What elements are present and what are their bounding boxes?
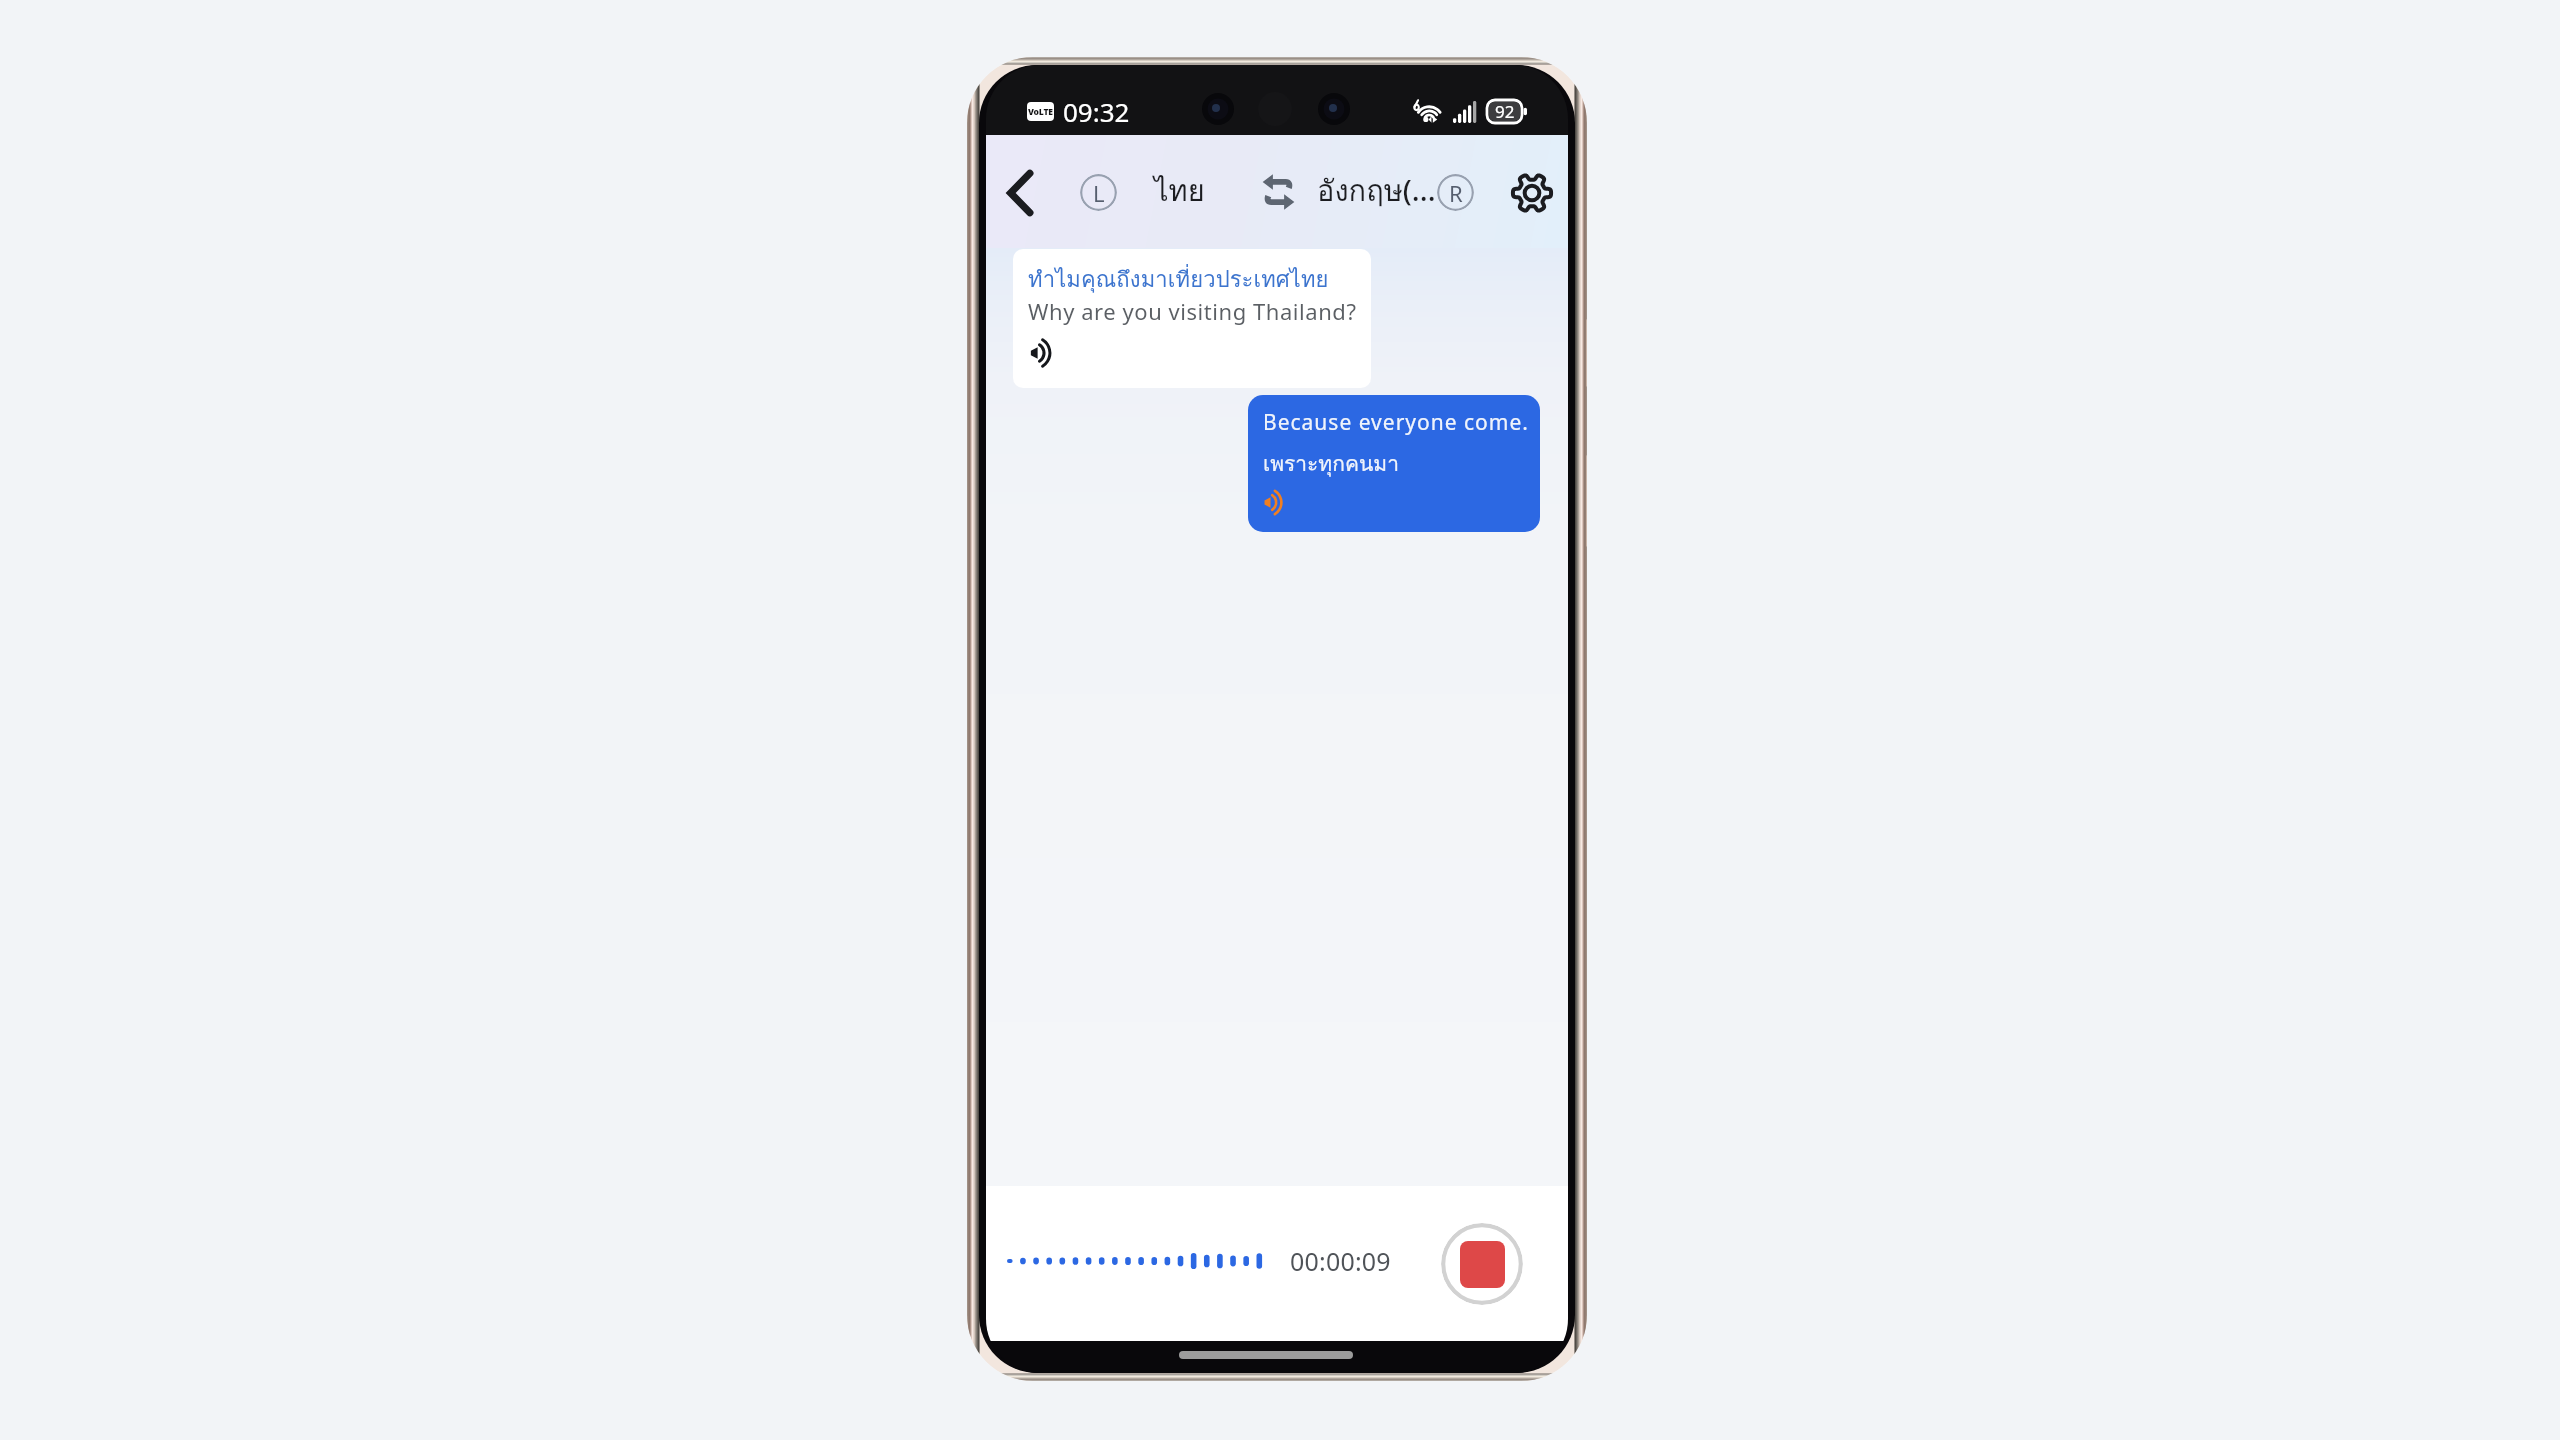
staticText: อังกฤษ(... <box>1317 168 1436 214</box>
button[interactable]: Play audio <box>1028 338 1054 368</box>
staticText: 92 <box>1495 100 1515 123</box>
staticText: 09:32 <box>1063 94 1130 129</box>
button[interactable]: Swap languages <box>1257 169 1299 215</box>
staticText: 00:00:09 <box>1290 1244 1391 1278</box>
staticText: เพราะทุกคนมา <box>1263 447 1399 480</box>
staticText: VoLTE <box>1028 106 1053 118</box>
button[interactable]: L <box>1080 174 1117 211</box>
button[interactable]: Settings <box>1507 168 1557 218</box>
staticText: R <box>1449 178 1463 208</box>
button[interactable]: Back <box>996 169 1044 217</box>
button[interactable]: ทำไมคุณถึงมาเที่ยวประเทศไทย <box>1013 249 1371 388</box>
staticText: Because everyone come. <box>1263 408 1529 437</box>
button[interactable]: Because everyone come. <box>1248 395 1540 532</box>
button[interactable]: R <box>1437 174 1474 211</box>
button[interactable]: Play audio <box>1262 489 1285 516</box>
staticText: ทำไมคุณถึงมาเที่ยวประเทศไทย <box>1028 262 1329 297</box>
staticText: Why are you visiting Thailand? <box>1028 296 1357 326</box>
staticText: ไทย <box>1154 168 1205 214</box>
button[interactable]: Stop recording <box>1441 1223 1523 1305</box>
staticText: L <box>1093 178 1105 208</box>
